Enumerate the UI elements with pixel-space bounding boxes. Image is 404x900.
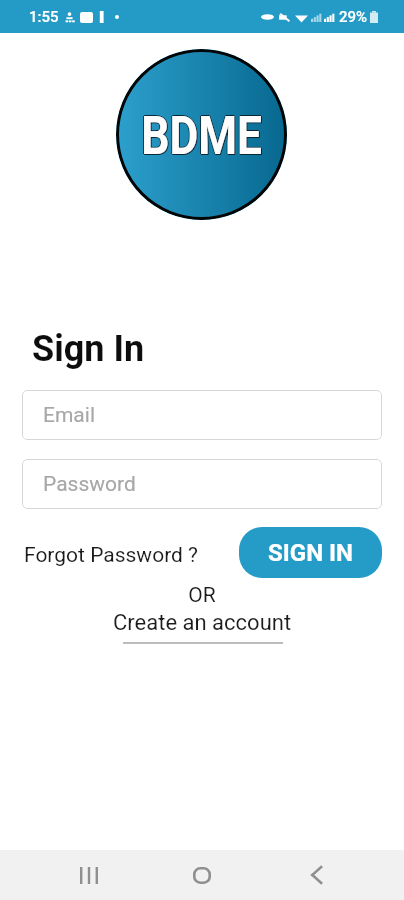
staticText: BDME (141, 105, 263, 168)
button[interactable]: Password (22, 459, 382, 509)
button[interactable]: Email (22, 390, 382, 440)
staticText: Sign In (32, 328, 145, 370)
staticText: BDME (141, 103, 263, 166)
button[interactable]: SIGN IN (239, 527, 382, 578)
button[interactable]: Home (177, 850, 227, 900)
staticText: BDME (142, 104, 264, 167)
staticText: 1:55 (29, 8, 59, 26)
staticText: BDME (140, 104, 262, 167)
button[interactable]: Create an account (113, 610, 292, 636)
staticText: Email (43, 403, 95, 428)
staticText: BDME (142, 105, 264, 168)
staticText: Forgot Password ? (24, 543, 199, 568)
button[interactable]: Recent apps (64, 850, 114, 900)
staticText: OR (0, 583, 404, 608)
staticText: Password (43, 472, 136, 497)
button[interactable]: Back (291, 850, 341, 900)
staticText: 29% (339, 8, 368, 26)
staticText: SIGN IN (268, 539, 354, 567)
staticText: BDME (141, 104, 263, 167)
button[interactable]: Forgot Password ? (16, 537, 207, 574)
